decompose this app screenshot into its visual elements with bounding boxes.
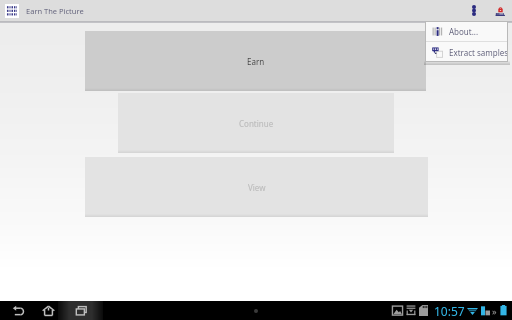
staticText: Extract samples xyxy=(449,47,508,58)
staticText: Continue xyxy=(239,118,274,129)
button[interactable]: Earn xyxy=(85,31,426,91)
staticText: View xyxy=(248,182,266,193)
button[interactable]: App icon xyxy=(5,4,19,18)
staticText: About... xyxy=(449,26,479,37)
button[interactable]: Back xyxy=(8,301,30,320)
button[interactable]: About... xyxy=(425,21,508,41)
button[interactable]: Home xyxy=(37,301,59,320)
button[interactable]: Tool bag xyxy=(492,0,508,21)
button[interactable]: Extract samples xyxy=(425,42,508,62)
button[interactable]: Recents xyxy=(70,301,92,320)
staticText: 10:57 xyxy=(434,303,465,319)
button[interactable]: More options xyxy=(464,0,484,21)
staticText: » xyxy=(492,305,497,317)
staticText: Earn xyxy=(247,56,265,67)
staticText: Earn The Picture xyxy=(26,6,84,16)
